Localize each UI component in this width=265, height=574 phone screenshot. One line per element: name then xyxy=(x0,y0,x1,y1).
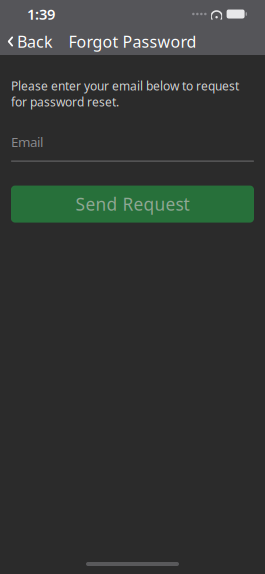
staticText: Forgot Password xyxy=(68,31,196,52)
staticText: Back xyxy=(17,31,53,52)
staticText: 1:39 xyxy=(27,4,55,24)
button[interactable]: Back xyxy=(0,27,60,56)
staticText: Send Request xyxy=(75,193,189,216)
button[interactable]: Send Request xyxy=(11,186,254,223)
staticText: Email xyxy=(11,133,43,151)
staticText: Please enter your email below to request… xyxy=(11,78,239,110)
